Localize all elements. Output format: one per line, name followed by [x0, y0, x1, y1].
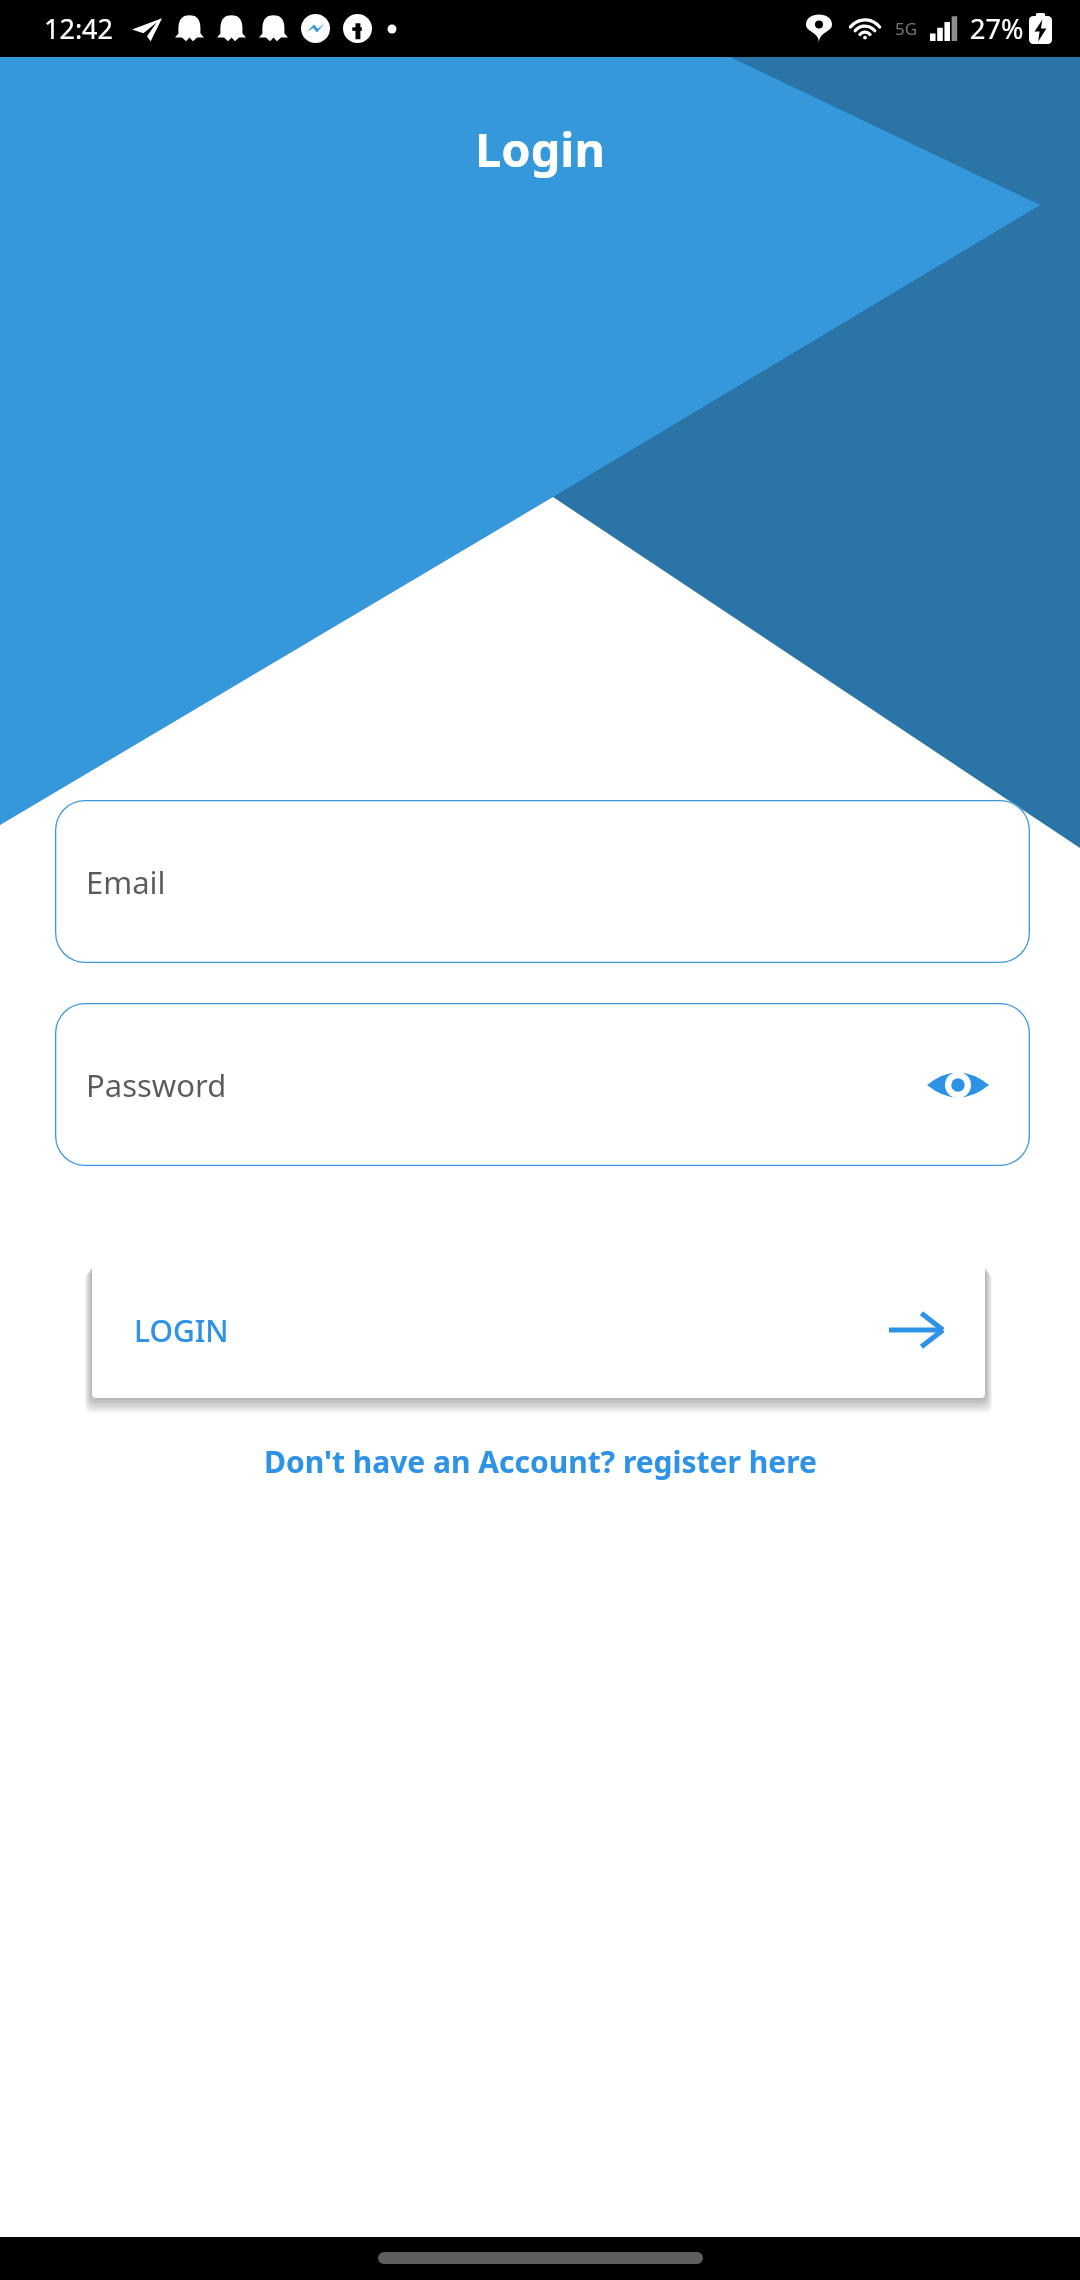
staticText: 27%: [970, 10, 1024, 47]
button[interactable]: LOGIN: [92, 1262, 985, 1398]
staticText: 12:42: [44, 10, 114, 47]
button[interactable]: Don't have an Account? register here: [0, 1426, 1080, 1496]
button[interactable]: Password: [55, 1003, 1030, 1166]
staticText: Email: [86, 861, 166, 903]
staticText: Don't have an Account? register here: [264, 1441, 817, 1482]
staticText: LOGIN: [134, 1310, 229, 1351]
other: Submit login: [889, 1307, 943, 1353]
staticText: Login: [475, 117, 605, 181]
button[interactable]: Show password: [922, 1049, 994, 1121]
button[interactable]: Email: [55, 800, 1030, 963]
staticText: Password: [86, 1064, 227, 1106]
staticText: 5G: [895, 17, 918, 40]
